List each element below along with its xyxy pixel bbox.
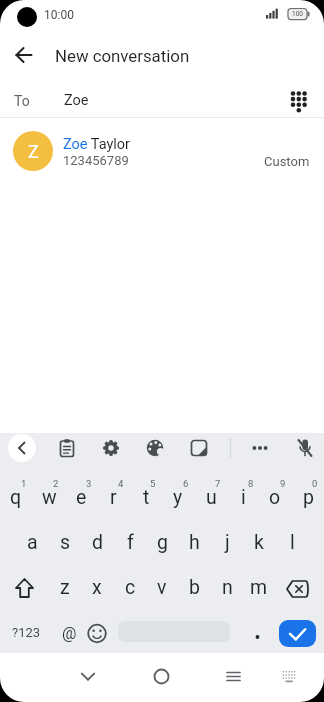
button[interactable]: n	[211, 573, 243, 601]
staticText: @	[62, 624, 77, 643]
staticText: 4	[118, 478, 124, 489]
button[interactable]: p	[292, 483, 324, 511]
button[interactable]: r	[97, 483, 129, 511]
button[interactable]: k	[243, 528, 275, 556]
button[interactable]: t	[130, 483, 162, 511]
button[interactable]: Z	[13, 131, 53, 171]
button[interactable]: e	[65, 483, 97, 511]
staticText: o	[269, 486, 281, 509]
button[interactable]: i	[227, 483, 259, 511]
button[interactable]: @	[53, 621, 85, 646]
staticText: y	[173, 486, 183, 509]
staticText: 6	[183, 478, 189, 489]
button[interactable]	[185, 434, 213, 462]
button[interactable]: y	[162, 483, 194, 511]
button[interactable]	[81, 620, 113, 645]
button[interactable]	[8, 434, 36, 462]
staticText: w	[42, 486, 57, 509]
button[interactable]	[53, 434, 81, 462]
button[interactable]	[145, 662, 177, 690]
staticText: j	[225, 531, 230, 554]
staticText: s	[60, 531, 71, 554]
button[interactable]	[141, 434, 169, 462]
button[interactable]: j	[211, 528, 243, 556]
staticText: x	[92, 576, 102, 599]
staticText: 100	[292, 10, 303, 18]
button[interactable]: q	[0, 483, 32, 511]
button[interactable]	[97, 434, 125, 462]
button[interactable]: z	[49, 573, 81, 601]
button[interactable]: m	[243, 573, 275, 601]
staticText: e	[76, 486, 87, 509]
staticText: d	[92, 531, 103, 554]
staticText: 8	[248, 478, 254, 489]
staticText: Z	[28, 141, 39, 162]
button[interactable]	[8, 41, 40, 69]
button[interactable]: x	[81, 573, 113, 601]
staticText: Zoe	[64, 92, 89, 109]
staticText: i	[241, 486, 246, 509]
staticText: 1	[21, 478, 27, 489]
button[interactable]: o	[259, 483, 291, 511]
button[interactable]	[0, 126, 324, 176]
staticText: m	[250, 576, 268, 599]
staticText: 2	[53, 478, 59, 489]
button[interactable]	[72, 662, 104, 690]
button[interactable]: d	[81, 528, 113, 556]
staticText: 9	[280, 478, 286, 489]
button[interactable]: c	[114, 573, 146, 601]
button[interactable]: l	[276, 528, 308, 556]
staticText: 5	[150, 478, 156, 489]
button[interactable]	[246, 434, 274, 462]
staticText: Custom	[264, 154, 310, 169]
staticText: To	[14, 93, 30, 109]
button[interactable]: a	[16, 528, 48, 556]
button[interactable]	[283, 86, 317, 116]
staticText: n	[222, 576, 233, 599]
button[interactable]: w	[33, 483, 65, 511]
button[interactable]: g	[146, 528, 178, 556]
button[interactable]: ?123	[10, 622, 42, 643]
staticText: t	[143, 486, 150, 509]
staticText: l	[290, 531, 295, 554]
button[interactable]	[281, 575, 317, 603]
staticText: b	[189, 576, 200, 599]
staticText: 3	[86, 478, 92, 489]
button[interactable]: h	[178, 528, 210, 556]
button[interactable]: s	[49, 528, 81, 556]
button[interactable]	[6, 575, 43, 603]
staticText: c	[125, 576, 136, 599]
staticText: a	[27, 531, 38, 554]
button[interactable]: f	[114, 528, 146, 556]
button[interactable]	[291, 434, 319, 462]
staticText: 7	[215, 478, 221, 489]
staticText: q	[10, 486, 22, 509]
button[interactable]	[273, 662, 305, 690]
staticText: k	[254, 531, 264, 554]
staticText: 123456789	[63, 153, 129, 168]
staticText: g	[157, 531, 168, 554]
staticText: z	[60, 576, 70, 599]
button[interactable]	[217, 662, 249, 690]
staticText: 10:00	[44, 8, 74, 22]
staticText: New conversation	[55, 46, 190, 66]
staticText: 0	[312, 478, 318, 489]
staticText: r	[110, 486, 117, 509]
button[interactable]	[279, 620, 316, 647]
staticText: p	[303, 486, 314, 509]
staticText: ?123	[12, 625, 41, 640]
button[interactable]: u	[195, 483, 227, 511]
button[interactable]: b	[178, 573, 210, 601]
staticText: f	[127, 531, 134, 554]
staticText: h	[189, 531, 200, 554]
staticText: Zoe Taylor	[63, 136, 131, 152]
staticText: v	[157, 576, 167, 599]
staticText: u	[206, 486, 217, 509]
button[interactable]: v	[146, 573, 178, 601]
